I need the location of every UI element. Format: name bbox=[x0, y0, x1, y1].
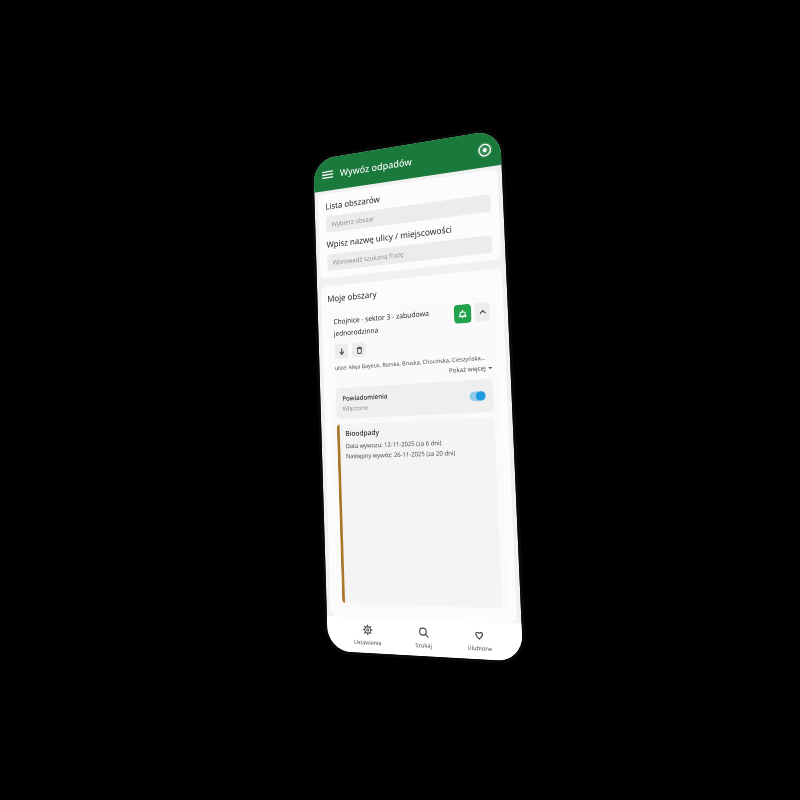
button[interactable]: Szukaj bbox=[408, 623, 438, 653]
staticText: Data wywozu: 12-11-2025 (za 6 dni) bbox=[346, 439, 442, 450]
button[interactable]: Usuń bbox=[352, 342, 366, 358]
button[interactable]: Powiadomienia bbox=[336, 379, 494, 419]
button[interactable]: Wybierz obszar bbox=[326, 194, 491, 233]
button[interactable]: Informacje bbox=[477, 141, 493, 159]
button[interactable]: Wprowadź szukaną frazę bbox=[327, 235, 493, 271]
button[interactable]: Pokaż więcej bbox=[335, 364, 493, 382]
button[interactable]: Powiadomienia bbox=[454, 304, 472, 324]
button[interactable]: Ustawienia bbox=[347, 621, 388, 650]
staticText: Szukaj bbox=[415, 641, 432, 649]
staticText: Wprowadź szukaną frazę bbox=[332, 249, 404, 267]
staticText: Chojnice - sektor 3 - zabudowa jednorodz… bbox=[333, 307, 450, 338]
button[interactable]: Bioodpady bbox=[337, 417, 502, 608]
staticText: Bioodpady bbox=[345, 428, 379, 439]
staticText: Moje obszary bbox=[327, 288, 378, 305]
staticText: Ustawienia bbox=[354, 638, 382, 646]
staticText: Ulubione bbox=[467, 643, 493, 652]
staticText: Lista obszarów bbox=[325, 193, 380, 213]
button[interactable]: Ulubione bbox=[460, 625, 499, 656]
staticText: Wywóz odpadów bbox=[340, 155, 412, 179]
button[interactable]: Pobierz bbox=[334, 343, 348, 359]
staticText: Pokaż więcej bbox=[449, 364, 486, 375]
staticText: ulice: Aleja Bayeux, Barska, Bruska, Cho… bbox=[335, 353, 486, 371]
staticText: Wybierz obszar bbox=[331, 214, 375, 228]
staticText: Powiadomienia bbox=[342, 391, 388, 403]
staticText: Wpisz nazwę ulicy / miejscowości bbox=[326, 223, 453, 251]
staticText: Następny wywóz: 26-11-2025 (za 20 dni) bbox=[346, 449, 456, 460]
staticText: Włączone bbox=[343, 404, 368, 413]
button[interactable]: Menu bbox=[321, 166, 334, 182]
button[interactable]: Zwiń bbox=[474, 302, 490, 322]
